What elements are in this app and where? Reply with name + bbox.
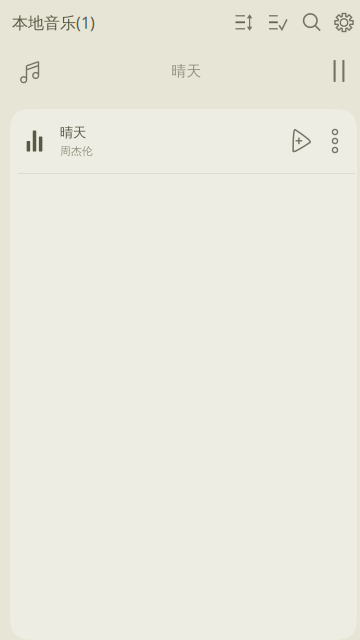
- button[interactable]: Search: [295, 0, 329, 45]
- button[interactable]: 晴天: [10, 109, 357, 173]
- button[interactable]: Sort: [227, 0, 261, 45]
- button[interactable]: Settings: [329, 0, 359, 45]
- staticText: 晴天: [171, 62, 201, 80]
- button[interactable]: Pause: [322, 45, 356, 97]
- staticText: 晴天: [60, 124, 86, 141]
- staticText: 本地音乐(1): [12, 12, 95, 33]
- staticText: 周杰伦: [60, 145, 93, 158]
- button[interactable]: Select items: [261, 0, 295, 45]
- button[interactable]: Now playing: [11, 45, 51, 97]
